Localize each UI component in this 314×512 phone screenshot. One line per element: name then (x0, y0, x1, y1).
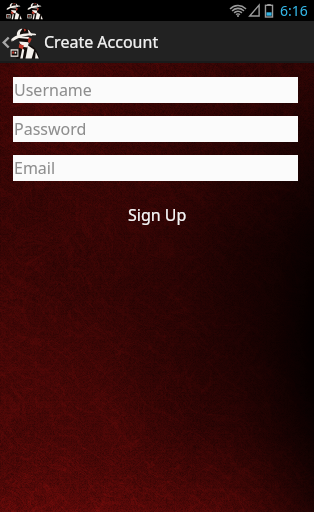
staticText: Sign Up (128, 204, 187, 226)
button[interactable]: Email (13, 155, 298, 181)
staticText: Username (14, 79, 92, 101)
staticText: 6:16 (280, 1, 308, 20)
staticText: Email (14, 157, 56, 179)
button[interactable]: Navigate up (0, 21, 41, 63)
staticText: Create Account (44, 31, 159, 53)
button[interactable]: Username (13, 77, 298, 103)
staticText: Password (14, 118, 87, 140)
button[interactable]: Password (13, 116, 298, 142)
button[interactable]: Sign Up (110, 200, 205, 230)
